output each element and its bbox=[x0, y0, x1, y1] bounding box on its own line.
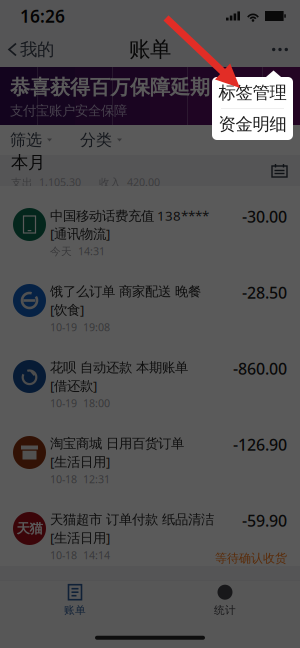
staticText: [生活日用] bbox=[50, 529, 110, 546]
button[interactable]: 筛选 bbox=[0, 125, 62, 155]
staticText: 标签管理 bbox=[218, 82, 286, 103]
staticText: -28.50 bbox=[242, 282, 287, 303]
staticText: 10-19 18:00 bbox=[50, 396, 110, 410]
button[interactable]: 更多 bbox=[260, 32, 300, 67]
staticText: -860.00 bbox=[233, 358, 287, 379]
staticText: 花呗 自动还款 本期账单 bbox=[50, 359, 188, 376]
staticText: 淘宝商城 日用百货订单 bbox=[50, 435, 184, 452]
staticText: 等待确认收货 bbox=[215, 551, 287, 566]
button[interactable]: 账单 bbox=[0, 581, 150, 621]
staticText: 我的 bbox=[20, 39, 54, 60]
staticText: -59.90 bbox=[242, 510, 287, 531]
staticText: [饮食] bbox=[50, 301, 84, 318]
staticText: 恭喜获得百万保障延期 bbox=[10, 75, 210, 100]
staticText: 支付宝账户安全保障 bbox=[10, 103, 127, 119]
staticText: 资金明细 bbox=[218, 114, 286, 135]
button[interactable]: 标签管理 bbox=[212, 77, 293, 108]
button[interactable]: 中国移动话费充值 138**** bbox=[0, 186, 300, 262]
staticText: 天猫 bbox=[16, 520, 42, 537]
button[interactable]: 淘宝商城 日用百货订单 bbox=[0, 414, 300, 490]
staticText: 账单 bbox=[64, 604, 86, 617]
staticText: [生活日用] bbox=[50, 453, 110, 470]
button[interactable]: 天猫 bbox=[0, 490, 300, 566]
staticText: 支出 1,105.30 收入 420.00 bbox=[11, 175, 160, 189]
staticText: 账单 bbox=[129, 36, 171, 63]
staticText: -126.90 bbox=[233, 434, 287, 455]
staticText: 分类 bbox=[80, 130, 112, 150]
button[interactable]: 饿了么订单 商家配送 晚餐 bbox=[0, 262, 300, 338]
staticText: 筛选 bbox=[10, 130, 42, 150]
staticText: 本月 bbox=[11, 152, 45, 173]
staticText: 10-18 12:31 bbox=[50, 472, 110, 486]
button[interactable]: 分类 bbox=[80, 125, 132, 155]
staticText: 天猫超市 订单付款 纸品清洁 bbox=[50, 511, 214, 528]
button[interactable]: 按日期筛选 bbox=[266, 158, 293, 183]
staticText: [通讯物流] bbox=[50, 225, 110, 242]
staticText: 统计 bbox=[214, 604, 236, 617]
button[interactable]: 恭喜获得百万保障延期 bbox=[0, 67, 300, 125]
staticText: 16:26 bbox=[20, 4, 65, 27]
staticText: [借还款] bbox=[50, 377, 97, 394]
button[interactable]: 我的 bbox=[0, 32, 62, 67]
staticText: 饿了么订单 商家配送 晚餐 bbox=[50, 283, 201, 300]
staticText: 中国移动话费充值 138**** bbox=[50, 207, 209, 224]
button[interactable]: 花呗 自动还款 本期账单 bbox=[0, 338, 300, 414]
staticText: 今天 14:31 bbox=[50, 244, 105, 258]
button[interactable]: 资金明细 bbox=[212, 109, 293, 140]
staticText: -30.00 bbox=[242, 206, 287, 227]
staticText: 10-18 14:14 bbox=[50, 548, 110, 562]
button[interactable]: 统计 bbox=[150, 581, 300, 621]
staticText: 10-19 19:08 bbox=[50, 320, 110, 334]
